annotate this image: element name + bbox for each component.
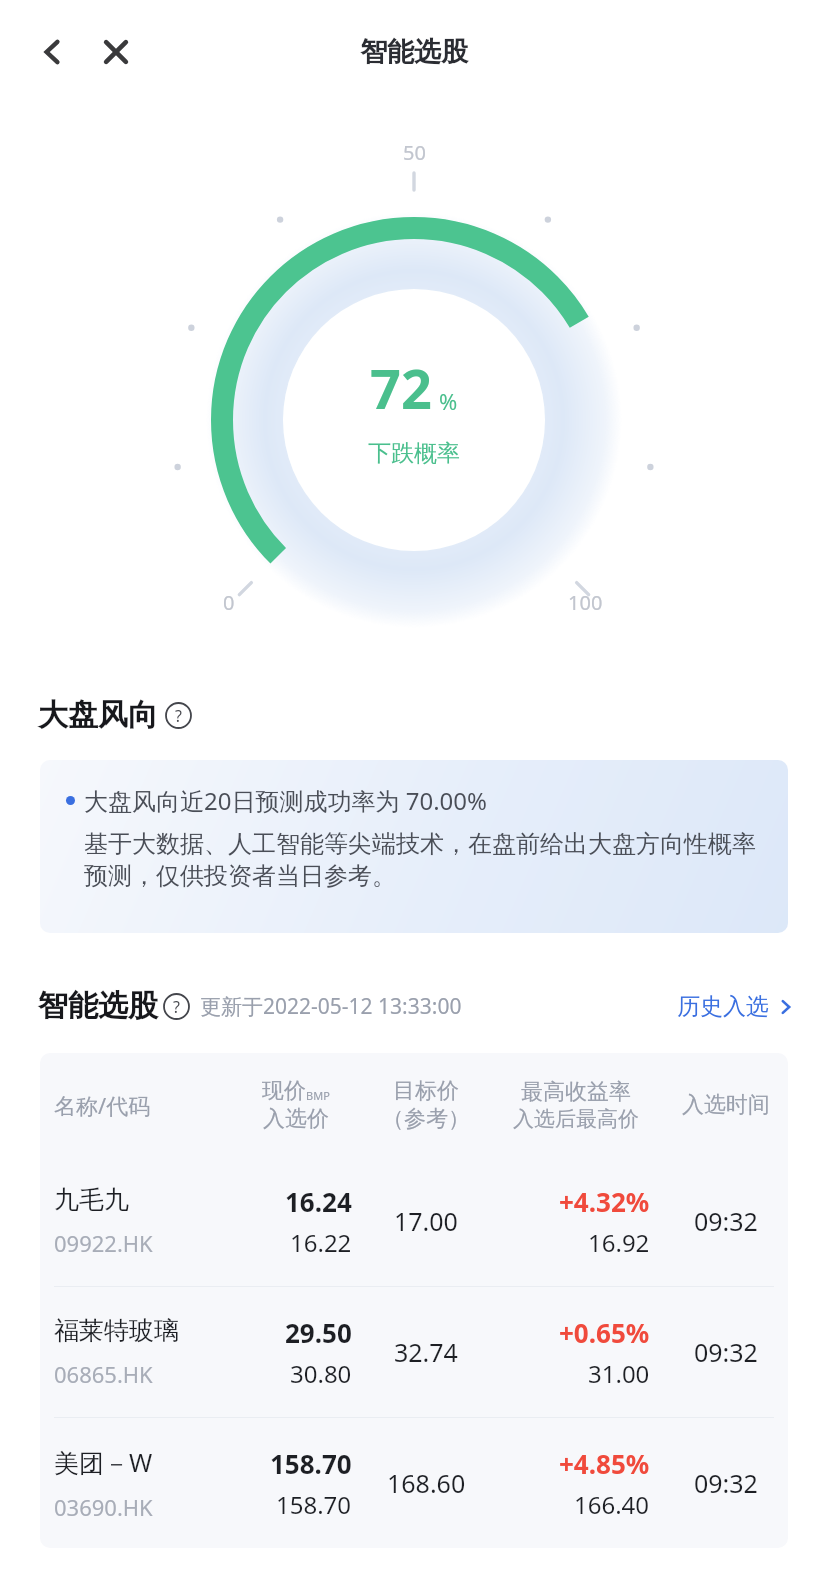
button[interactable]: Close	[92, 28, 140, 76]
staticText: 31.00	[588, 1357, 650, 1390]
staticText: 九毛九	[54, 1184, 129, 1215]
button[interactable]: 历史入选	[677, 992, 794, 1021]
staticText: 72	[370, 351, 432, 425]
button[interactable]: About market trend	[165, 702, 192, 729]
staticText: 大盘风向	[38, 696, 158, 734]
staticText: BMP	[306, 1088, 330, 1103]
staticText: 06865.HK	[54, 1359, 153, 1389]
staticText: 目标价	[393, 1077, 459, 1105]
staticText: 09:32	[694, 1335, 758, 1369]
staticText: 29.50	[285, 1315, 352, 1350]
staticText: 16.22	[290, 1226, 352, 1259]
staticText: 0	[223, 589, 235, 616]
staticText: +4.85%	[559, 1446, 650, 1481]
staticText: +0.65%	[559, 1315, 650, 1350]
button[interactable]: 九毛九	[40, 1156, 788, 1286]
staticText: 更新于2022-05-12 13:33:00	[200, 992, 462, 1021]
staticText: 158.70	[270, 1446, 352, 1481]
staticText: 17.00	[394, 1204, 458, 1238]
staticText: 智能选股	[360, 35, 468, 69]
staticText: 名称/代码	[54, 1090, 151, 1120]
staticText: 09:32	[694, 1466, 758, 1500]
staticText: 09:32	[694, 1204, 758, 1238]
staticText: %	[439, 386, 458, 416]
staticText: 50	[403, 139, 426, 166]
staticText: 09922.HK	[54, 1228, 153, 1258]
button[interactable]: About smart stock picks	[163, 993, 190, 1020]
staticText: 100	[568, 589, 603, 616]
staticText: 智能选股	[38, 987, 158, 1025]
staticText: 下跌概率	[368, 439, 460, 468]
staticText: 福莱特玻璃	[54, 1315, 179, 1346]
staticText: 16.24	[285, 1184, 352, 1219]
staticText: 30.80	[290, 1357, 352, 1390]
button[interactable]: 福莱特玻璃	[40, 1287, 788, 1417]
staticText: 03690.HK	[54, 1492, 153, 1522]
staticText: 最高收益率	[521, 1078, 631, 1106]
staticText: 32.74	[394, 1335, 458, 1369]
staticText: 美团－W	[54, 1445, 153, 1479]
staticText: 入选时间	[682, 1091, 770, 1119]
staticText: 基于大数据、人工智能等尖端技术，在盘前给出大盘方向性概率预测，仅供投资者当日参考…	[84, 829, 764, 891]
staticText: （参考）	[382, 1105, 470, 1133]
staticText: ?	[173, 996, 180, 1018]
staticText: 大盘风向近20日预测成功率为 70.00%	[84, 784, 487, 817]
staticText: 入选价	[263, 1105, 329, 1133]
staticText: 166.40	[574, 1488, 650, 1521]
staticText: 158.70	[276, 1488, 352, 1521]
button[interactable]: 美团－W	[40, 1418, 788, 1548]
staticText: 16.92	[588, 1226, 650, 1259]
staticText: 历史入选	[677, 992, 769, 1021]
staticText: ?	[175, 705, 182, 727]
staticText: 入选后最高价	[513, 1106, 639, 1132]
staticText: +4.32%	[559, 1184, 650, 1219]
button[interactable]: 大盘风向近20日预测成功率为 70.00%	[40, 760, 788, 933]
staticText: 168.60	[387, 1466, 466, 1500]
button[interactable]: Back	[28, 28, 76, 76]
staticText: 现价	[262, 1077, 306, 1105]
